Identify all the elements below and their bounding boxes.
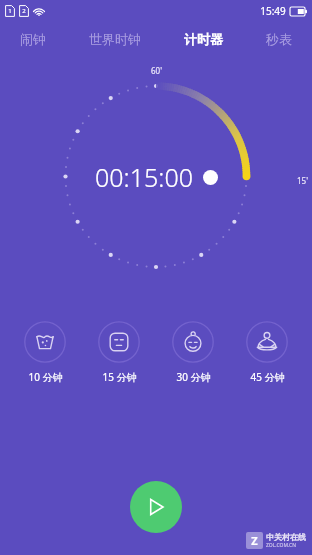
button[interactable]: 30 minutes baby timer [170,319,216,386]
button[interactable]: 15 minutes face mask timer [96,319,142,386]
staticText: 10 分钟 [28,370,63,384]
staticText: 中关村在线 [266,532,306,542]
staticText: Z [251,533,258,548]
staticText: 30 分钟 [176,370,211,384]
staticText: 45 分钟 [250,370,285,384]
staticText: 15:49 [260,4,286,18]
button[interactable]: 10 minutes laundry timer [22,319,68,386]
button[interactable]: 计时器 [178,27,229,51]
staticText: 60' [151,65,162,76]
staticText: 15 分钟 [102,370,137,384]
staticText: 计时器 [184,31,223,47]
staticText: 00:15:00 [95,160,193,194]
staticText: 秒表 [266,31,292,47]
button[interactable]: Start timer [130,481,182,533]
staticText: 15' [297,175,308,186]
button[interactable]: 秒表 [260,27,298,51]
staticText: 2 [22,7,26,15]
button[interactable]: 闹钟 [14,27,52,51]
button[interactable]: 世界时钟 [83,27,147,51]
button[interactable]: 45 minutes meditation timer [244,319,290,386]
staticText: 世界时钟 [89,31,141,47]
staticText: 闹钟 [20,31,46,47]
staticText: ZOL.COM.CN [266,542,296,549]
staticText: 1 [8,7,12,15]
